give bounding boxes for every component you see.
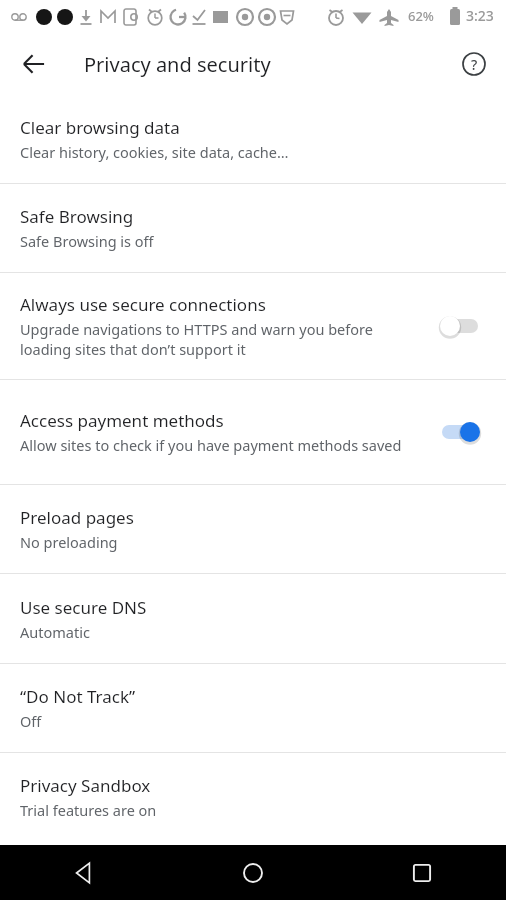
staticText: 3:23 [466, 6, 494, 25]
staticText: Safe Browsing is off [20, 231, 154, 251]
button[interactable]: Use secure DNS [0, 574, 506, 663]
staticText: Access payment methods [20, 409, 224, 432]
button[interactable]: Toggle off [438, 309, 490, 343]
staticText: Privacy Sandbox [20, 774, 151, 797]
staticText: Allow sites to check if you have payment… [20, 435, 402, 455]
staticText: Off [20, 711, 42, 731]
staticText: Preload pages [20, 506, 134, 529]
button[interactable]: Clear browsing data [0, 95, 506, 183]
staticText: Automatic [20, 622, 90, 642]
staticText: Clear browsing data [20, 116, 180, 139]
button[interactable]: Privacy Sandbox [0, 753, 506, 841]
button[interactable]: Safe Browsing [0, 184, 506, 272]
button[interactable]: Back [10, 40, 58, 88]
staticText: Trial features are on [20, 800, 157, 820]
staticText: Safe Browsing [20, 205, 134, 228]
button[interactable]: Help [450, 40, 498, 88]
button[interactable]: “Do Not Track” [0, 664, 506, 752]
staticText: ? [471, 55, 478, 74]
button[interactable]: Back [0, 845, 168, 900]
button[interactable]: Access payment methods [0, 380, 506, 484]
staticText: Privacy and security [84, 51, 271, 78]
staticText: No preloading [20, 532, 118, 552]
staticText: 62% [408, 7, 434, 25]
staticText: Upgrade navigations to HTTPS and warn yo… [20, 319, 424, 360]
button[interactable]: Toggle on [438, 415, 490, 449]
staticText: Use secure DNS [20, 596, 147, 619]
button[interactable]: Recents [337, 845, 506, 900]
staticText: Always use secure connections [20, 293, 266, 316]
button[interactable]: Home [168, 845, 337, 900]
staticText: “Do Not Track” [20, 685, 136, 708]
button[interactable]: Preload pages [0, 485, 506, 573]
staticText: Clear history, cookies, site data, cache… [20, 142, 289, 162]
button[interactable]: Always use secure connections [0, 273, 506, 379]
